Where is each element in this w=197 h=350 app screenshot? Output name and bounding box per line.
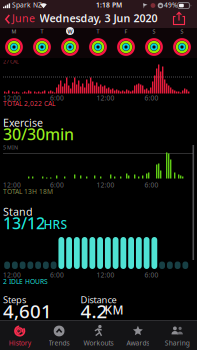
staticText: KM [104,302,123,318]
staticText: Sharing [165,338,190,347]
staticText: Steps [3,293,26,306]
staticText: Exercise [3,115,43,130]
staticText: 30/30min [3,123,74,145]
staticText: Awards [126,338,149,347]
staticText: 12:00 [3,270,21,279]
staticText: 12:00 [96,270,114,279]
staticText: 6:00 [144,270,158,279]
staticText: T [40,28,43,35]
staticText: M [11,28,16,35]
staticText: 6:00 [144,180,158,189]
staticText: 13/12 [3,212,45,234]
staticText: Workouts [83,338,113,347]
staticText: T [96,28,99,35]
staticText: 12:00 [96,93,114,102]
staticText: HRS [43,216,67,232]
staticText: Spark NZ [12,0,42,9]
staticText: 12:00 [3,93,21,102]
staticText: Trends [49,338,70,347]
staticText: Wednesday, 3 Jun 2020 [39,11,157,25]
staticText: 2 IDLE HOURS [3,277,48,286]
staticText: June [12,11,35,25]
staticText: 4,601 [3,298,52,323]
staticText: Stand [3,204,33,219]
staticText: W [67,28,72,35]
staticText: 6:00 [144,93,158,102]
staticText: 49% [164,0,178,9]
staticText: TOTAL 2,022 CAL [3,99,55,108]
staticText: 1:18 PM [96,0,122,9]
staticText: TOTAL 13H 18M [3,187,53,196]
staticText: S [152,28,155,35]
staticText: Distance [80,293,116,306]
staticText: 6:00 [50,180,64,189]
staticText: S [180,28,183,35]
staticText: 27 CAL [3,58,19,65]
staticText: F [124,28,127,35]
staticText: 12:00 [96,180,114,189]
staticText: 12:00 [3,180,21,189]
staticText: 6:00 [50,93,64,102]
staticText: 6:00 [50,270,64,279]
staticText: History [9,338,31,347]
staticText: 5 MIN [3,144,18,151]
staticText: 4.2 [80,298,107,323]
